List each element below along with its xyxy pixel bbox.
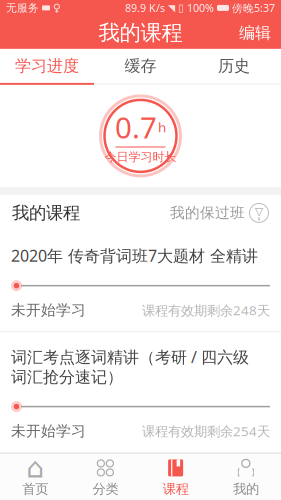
button[interactable]: 缓存: [94, 49, 187, 83]
staticText: 今日学习时长: [104, 149, 176, 164]
button[interactable]: 编辑: [229, 17, 281, 49]
staticText: ▯: [178, 2, 184, 14]
button[interactable]: 我的保过班: [170, 198, 245, 228]
staticText: h: [158, 118, 166, 136]
button[interactable]: 课程: [140, 454, 211, 500]
button[interactable]: 我的: [211, 454, 281, 500]
staticText: 我的课程: [98, 20, 182, 46]
staticText: 学习进度: [15, 56, 79, 76]
staticText: 词汇考点逐词精讲（考研 / 四六级词汇抢分速记）: [11, 346, 249, 387]
staticText: 课程: [163, 481, 189, 497]
staticText: 我的保过班: [170, 204, 245, 222]
button[interactable]: 2020年 传奇背词班7大题材 全精讲: [0, 231, 281, 331]
staticText: ◥: [168, 3, 175, 13]
staticText: ▽: [255, 205, 263, 217]
staticText: 100%: [187, 1, 214, 15]
staticText: ⌂: [26, 452, 44, 484]
staticText: 首页: [22, 481, 48, 497]
staticText: 我的课程: [12, 202, 80, 224]
staticText: 傍晚5:37: [232, 1, 275, 15]
staticText: ♀: [53, 2, 61, 14]
staticText: 0.7: [115, 108, 157, 147]
staticText: 历史: [218, 56, 250, 76]
staticText: 分类: [92, 481, 118, 497]
staticText: 缓存: [124, 56, 156, 76]
staticText: 无服务: [6, 1, 39, 14]
staticText: 未开始学习: [11, 422, 86, 440]
button[interactable]: ⌂: [0, 454, 70, 500]
staticText: 2020年 传奇背词班7大题材 全精讲: [11, 245, 258, 266]
button[interactable]: 学习进度: [0, 49, 94, 83]
staticText: 课程有效期剩余254天: [142, 422, 270, 440]
button[interactable]: 词汇考点逐词精讲（考研 / 四六级词汇抢分速记）: [0, 332, 281, 452]
button[interactable]: 历史: [187, 49, 281, 83]
button[interactable]: 筛选: [245, 199, 273, 227]
staticText: 89.9 K/s: [125, 1, 165, 15]
staticText: 编辑: [239, 23, 271, 43]
staticText: 未开始学习: [11, 301, 86, 319]
staticText: 课程有效期剩余248天: [142, 301, 270, 319]
staticText: 我的: [233, 481, 259, 497]
button[interactable]: 分类: [70, 454, 140, 500]
